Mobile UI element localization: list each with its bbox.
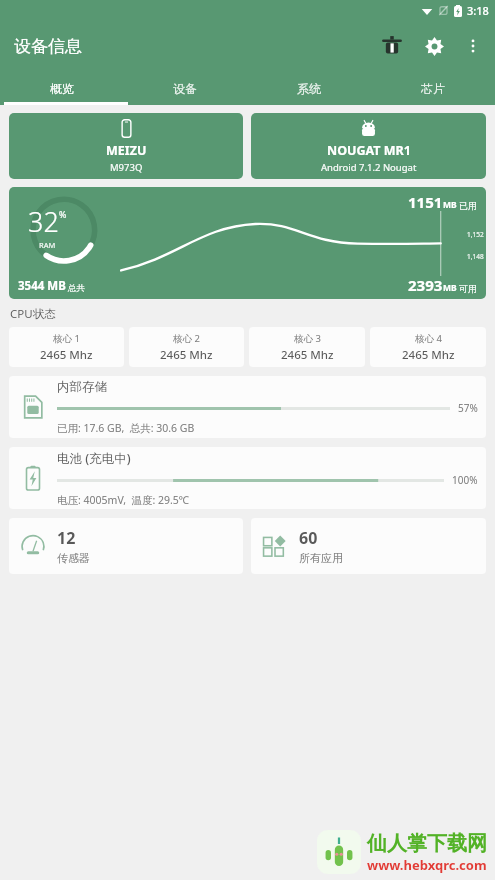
staticText: 100%	[452, 473, 478, 487]
staticText: 系统	[297, 81, 321, 96]
staticText: NOUGAT MR1	[327, 142, 411, 159]
staticText: 概览	[50, 81, 74, 96]
staticText: 芯片	[421, 81, 445, 96]
button[interactable]: 概览	[0, 72, 123, 105]
staticText: 1,148	[467, 252, 484, 261]
staticText: 核心 2	[173, 332, 200, 345]
button[interactable]: 设备	[123, 72, 247, 105]
staticText: www.hebxqrc.com	[367, 856, 487, 874]
staticText: 12	[57, 527, 76, 549]
staticText: 总共	[68, 283, 85, 294]
staticText: 2465 Mhz	[40, 347, 93, 363]
staticText: 3:18	[467, 3, 489, 18]
staticText: 传感器	[57, 551, 90, 565]
button[interactable]: 电池 (充电中)	[9, 447, 486, 509]
staticText: 核心 3	[294, 332, 321, 345]
staticText: MB	[443, 199, 457, 211]
staticText: 可用	[459, 283, 477, 294]
button[interactable]: 核心 4	[370, 327, 486, 367]
staticText: 已用	[459, 200, 477, 211]
staticText: 2465 Mhz	[281, 347, 334, 363]
staticText: 所有应用	[299, 551, 343, 565]
staticText: 2465 Mhz	[402, 347, 455, 363]
staticText: Android 7.1.2 Nougat	[321, 161, 417, 174]
button[interactable]: 核心 2	[129, 327, 244, 367]
button[interactable]: 芯片	[371, 72, 495, 105]
button[interactable]: MEIZU	[9, 113, 243, 179]
button[interactable]: 核心 1	[9, 327, 124, 367]
staticText: 已用: 17.6 GB, 总共: 30.6 GB	[57, 421, 195, 435]
staticText: MB	[443, 282, 457, 294]
staticText: MEIZU	[106, 142, 147, 159]
button[interactable]: 12	[9, 518, 243, 574]
staticText: 核心 1	[53, 332, 80, 345]
staticText: %	[59, 208, 67, 220]
staticText: 60	[299, 527, 318, 549]
button[interactable]: More options	[455, 28, 491, 64]
staticText: 1,152	[467, 230, 484, 239]
staticText: 核心 4	[415, 332, 442, 345]
staticText: 57%	[458, 401, 478, 415]
staticText: RAM	[39, 240, 56, 250]
staticText: 1151	[408, 192, 443, 212]
staticText: M973Q	[110, 161, 143, 174]
button[interactable]: Settings	[413, 25, 455, 67]
staticText: CPU状态	[10, 306, 56, 322]
staticText: 仙人掌下载网	[367, 831, 487, 856]
staticText: 内部存储	[57, 379, 107, 395]
staticText: 电压: 4005mV, 温度: 29.5℃	[57, 493, 190, 507]
button[interactable]: 32	[9, 187, 486, 299]
staticText: 设备信息	[14, 36, 82, 57]
button[interactable]: 核心 3	[249, 327, 365, 367]
button[interactable]: 60	[251, 518, 486, 574]
staticText: 3544 MB	[18, 278, 66, 294]
staticText: 电池 (充电中)	[57, 450, 131, 467]
button[interactable]: NOUGAT MR1	[251, 113, 486, 179]
button[interactable]: 系统	[247, 72, 371, 105]
button[interactable]: Clean memory	[371, 25, 413, 67]
staticText: 2465 Mhz	[160, 347, 213, 363]
button[interactable]: 内部存储	[9, 376, 486, 438]
staticText: 2393	[408, 275, 443, 295]
staticText: 设备	[173, 81, 197, 96]
staticText: 32	[28, 203, 59, 240]
